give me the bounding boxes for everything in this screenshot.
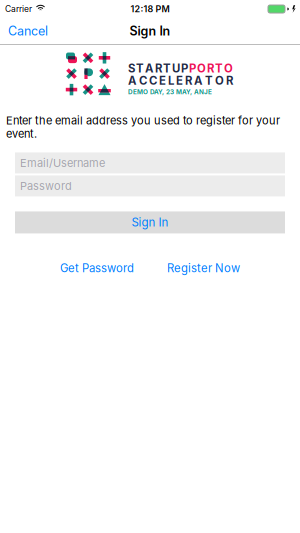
button[interactable]: Email/Username — [15, 152, 285, 173]
staticText: A C C E L E R A T O R — [128, 74, 233, 88]
staticText: Enter the email address you used to regi… — [6, 114, 280, 140]
staticText: Carrier — [5, 4, 32, 14]
button[interactable]: Register Now — [167, 261, 240, 275]
staticText: Get Password — [60, 261, 134, 275]
staticText: DEMO DAY, 23 MAY, ANJE — [128, 88, 212, 96]
staticText: 12:18 PM — [130, 4, 169, 14]
staticText: Email/Username — [20, 156, 105, 170]
button[interactable]: Password — [15, 175, 285, 196]
button[interactable]: Get Password — [60, 261, 134, 275]
button[interactable]: Cancel — [0, 23, 48, 38]
staticText: Register Now — [167, 261, 240, 275]
staticText: Sign In — [129, 23, 170, 38]
staticText: P O R T O — [189, 61, 233, 75]
staticText: S T A R T U P — [128, 61, 189, 75]
staticText: Sign In — [131, 215, 168, 229]
staticText: Cancel — [8, 23, 48, 38]
staticText: Password — [20, 179, 72, 193]
button[interactable]: Sign In — [15, 211, 285, 233]
